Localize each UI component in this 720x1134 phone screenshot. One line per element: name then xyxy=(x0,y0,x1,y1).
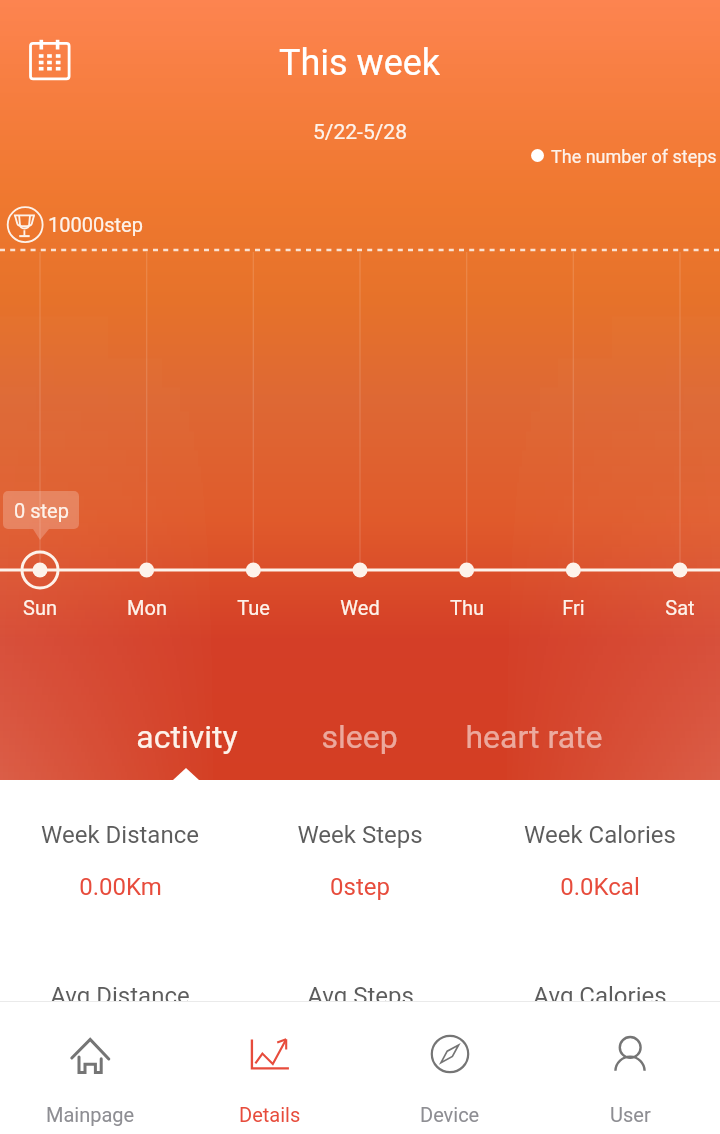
button[interactable]: Main page xyxy=(0,1002,180,1134)
staticText: User xyxy=(610,1103,651,1126)
button[interactable]: User xyxy=(540,1002,720,1134)
button[interactable]: heart rate xyxy=(444,710,624,764)
staticText: Fri xyxy=(562,596,585,619)
staticText: 0.00Km xyxy=(79,1034,162,1062)
staticText: 0.00Km xyxy=(79,873,162,901)
button[interactable]: Calendar xyxy=(26,36,74,84)
staticText: This week xyxy=(279,42,441,84)
staticText: Sat xyxy=(665,596,695,619)
staticText: Week Steps xyxy=(297,821,423,849)
staticText: Thu xyxy=(450,596,484,619)
button[interactable]: activity xyxy=(97,710,277,764)
staticText: 5/22-5/28 xyxy=(313,120,407,145)
staticText: sleep xyxy=(321,718,398,756)
button[interactable]: Details xyxy=(180,1002,360,1134)
staticText: Mon xyxy=(127,596,167,619)
staticText: heart rate xyxy=(465,718,603,756)
staticText: Mainpage xyxy=(46,1103,135,1126)
staticText: 0 step xyxy=(14,499,69,522)
staticText: Wed xyxy=(340,596,380,619)
staticText: Avg Steps xyxy=(307,982,414,1010)
staticText: 0step xyxy=(330,873,390,901)
staticText: Tue xyxy=(237,596,270,619)
staticText: The number of steps xyxy=(551,146,717,167)
staticText: Details xyxy=(239,1103,301,1126)
staticText: Sun xyxy=(23,596,57,619)
staticText: Week Calories xyxy=(524,821,676,849)
staticText: Device xyxy=(420,1103,480,1126)
staticText: 0.0Kcal xyxy=(560,873,640,901)
staticText: Week Distance xyxy=(41,821,199,849)
staticText: Avg Distance xyxy=(50,982,190,1010)
staticText: 0.0Kcal xyxy=(560,1034,640,1062)
button[interactable]: Device xyxy=(360,1002,540,1134)
staticText: 10000step xyxy=(48,213,143,236)
staticText: activity xyxy=(136,718,238,756)
staticText: Avg Calories xyxy=(533,982,667,1010)
button[interactable]: 0 step xyxy=(3,491,79,529)
button[interactable]: sleep xyxy=(269,710,449,764)
